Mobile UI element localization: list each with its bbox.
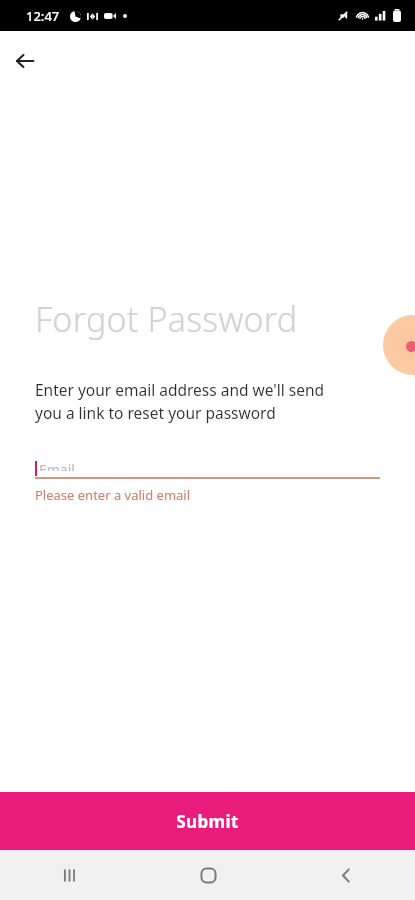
staticText: Submit	[176, 810, 239, 833]
button[interactable]: Submit	[0, 792, 415, 850]
staticText: 12:47	[26, 7, 60, 25]
button[interactable]: Home	[139, 850, 277, 900]
button[interactable]: Back	[4, 40, 46, 82]
staticText: Please enter a valid email	[35, 486, 191, 504]
staticText: Enter your email address and we'll send …	[35, 379, 325, 424]
button[interactable]: Recent apps	[0, 850, 139, 900]
staticText: Email	[39, 460, 75, 471]
button[interactable]: Email	[35, 447, 380, 477]
staticText: Forgot Password	[35, 296, 298, 342]
button[interactable]: Back	[277, 850, 415, 900]
